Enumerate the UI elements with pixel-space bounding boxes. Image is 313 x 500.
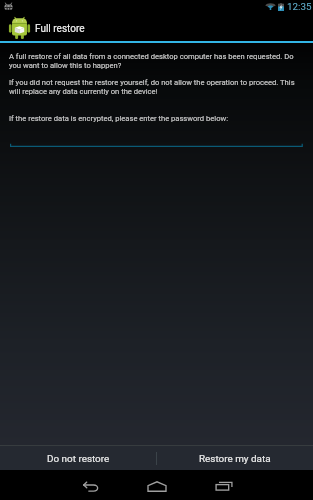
staticText: 12:35 [287,1,312,12]
staticText: If you did not request the restore yours… [9,78,299,96]
button[interactable]: Back [57,470,123,500]
staticText: If the restore data is encrypted, please… [9,114,229,123]
staticText: Full restore [35,23,85,35]
staticText: Do not restore [47,453,110,465]
staticText: Restore my data [199,453,271,465]
button[interactable]: Do not restore [0,446,156,470]
button[interactable]: Home [123,470,190,500]
button[interactable]: Restore my data [157,446,313,470]
staticText: A full restore of all data from a connec… [9,52,299,70]
button[interactable]: Recent apps [190,470,257,500]
button[interactable] [9,138,304,151]
